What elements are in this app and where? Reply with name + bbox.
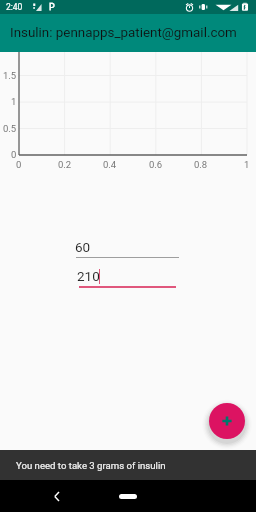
button[interactable]: Add bbox=[209, 403, 245, 439]
staticText: You need to take 3 grams of insulin bbox=[16, 460, 166, 471]
staticText: Insulin: pennapps_patient@gmail.com bbox=[10, 25, 237, 41]
staticText: 210 bbox=[77, 268, 100, 284]
staticText: 0 bbox=[16, 159, 22, 170]
staticText: 0.2 bbox=[58, 159, 72, 170]
staticText: 0.5 bbox=[3, 123, 17, 134]
button[interactable]: Home bbox=[119, 494, 137, 499]
staticText: 1 bbox=[11, 96, 17, 107]
staticText: P bbox=[49, 2, 55, 12]
staticText: 0.4 bbox=[103, 159, 117, 170]
staticText: 60 bbox=[75, 239, 91, 255]
staticText: 2:40 bbox=[6, 2, 23, 12]
staticText: 0.8 bbox=[194, 159, 208, 170]
staticText: 0.6 bbox=[149, 159, 163, 170]
button[interactable]: Back bbox=[45, 485, 67, 507]
staticText: 0 bbox=[11, 149, 17, 160]
button[interactable]: You need to take 3 grams of insulin bbox=[0, 450, 256, 480]
staticText: 1.5 bbox=[3, 70, 17, 81]
staticText: 1 bbox=[244, 159, 250, 170]
